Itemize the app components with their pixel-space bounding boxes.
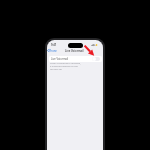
staticText: Live Voicemail: [51, 57, 69, 61]
button[interactable]: Phone: [47, 48, 57, 53]
staticText: can pick up.: [50, 68, 63, 71]
staticText: Phone: [49, 49, 57, 53]
button[interactable]: Live Voicemail: [49, 56, 102, 62]
staticText: a transcript appears so you: [50, 65, 78, 68]
staticText: When a voicemail is recorded,: [50, 62, 81, 65]
staticText: Live Voicemail: [65, 49, 84, 53]
button[interactable]: Live Voicemail toggle: [92, 57, 100, 61]
staticText: 9:41: [51, 43, 57, 47]
